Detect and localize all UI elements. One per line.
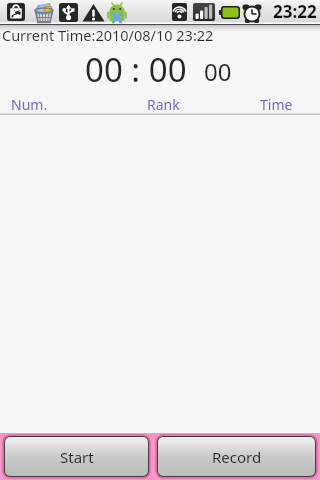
staticText: 23:22 — [273, 0, 317, 23]
staticText: Time — [260, 95, 293, 114]
staticText: Num. — [11, 95, 48, 114]
staticText: 00 — [204, 55, 232, 88]
staticText: 00 : 00 — [85, 47, 187, 92]
staticText: Record — [212, 447, 262, 467]
staticText: Current Time:2010/08/10 23:22 — [2, 25, 214, 45]
staticText: Rank — [147, 95, 180, 114]
button[interactable]: Record — [158, 437, 315, 476]
button[interactable]: Start — [5, 437, 148, 476]
staticText: Start — [60, 447, 94, 467]
